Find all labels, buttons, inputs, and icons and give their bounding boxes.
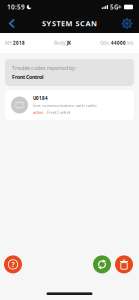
staticText: ?	[11, 260, 14, 269]
button[interactable]: Erase codes	[115, 255, 133, 273]
staticText: Body:	[54, 40, 66, 46]
staticText: - Front Control	[45, 109, 70, 115]
button[interactable]: U0184	[5, 90, 134, 120]
button[interactable]: Settings	[117, 14, 137, 33]
button[interactable]: Rescan	[93, 255, 111, 273]
staticText: Trouble codes reported by:	[12, 64, 76, 72]
staticText: Front Control	[12, 74, 44, 81]
staticText: 2018	[13, 40, 25, 46]
staticText: U0184	[33, 95, 48, 101]
staticText: 5G+	[110, 3, 122, 11]
staticText: SYSTEM SCAN	[42, 18, 97, 28]
button[interactable]: Back	[2, 14, 22, 33]
button[interactable]: Help	[4, 255, 22, 273]
staticText: lost communication with radio	[33, 102, 97, 108]
staticText: active	[33, 109, 43, 115]
staticText: Odo:	[100, 40, 110, 46]
staticText: JK	[67, 40, 71, 46]
staticText: MY:	[5, 40, 12, 46]
staticText: 10:59	[7, 3, 25, 11]
staticText: 44000	[111, 40, 126, 46]
staticText: MIL	[127, 40, 134, 46]
